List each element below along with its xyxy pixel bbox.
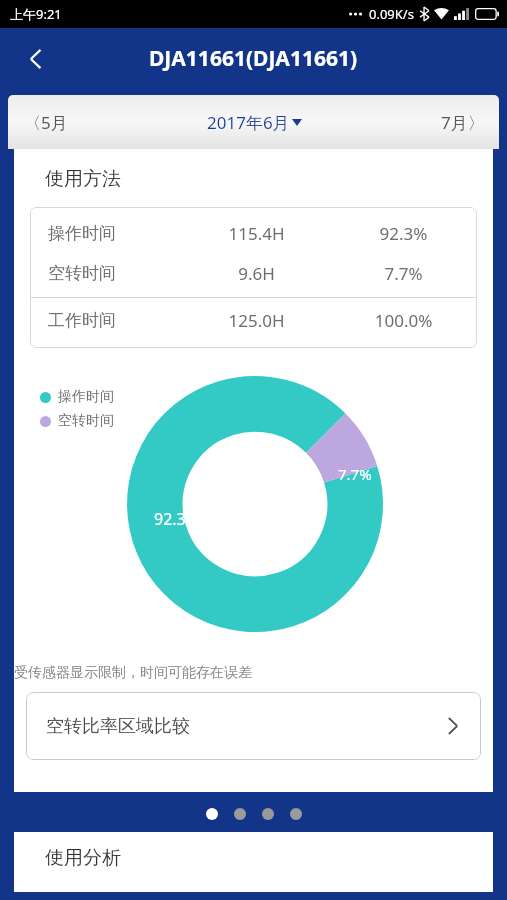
button[interactable]: 空转比率区域比较: [26, 692, 481, 760]
staticText: 7.7%: [330, 262, 477, 285]
button[interactable]: 7月〉: [355, 95, 499, 149]
button[interactable]: Back: [14, 37, 58, 81]
staticText: 使用方法: [45, 167, 121, 191]
staticText: 9.6H: [183, 262, 330, 285]
staticText: 受传感器显示限制，时间可能存在误差: [14, 664, 469, 682]
staticText: DJA11661(DJA11661): [149, 44, 358, 73]
staticText: 〈5月: [24, 111, 68, 134]
button[interactable]: 〈5月: [8, 95, 153, 149]
staticText: 操作时间: [48, 223, 183, 244]
staticText: 92.3%: [154, 508, 200, 530]
staticText: 100.0%: [330, 309, 477, 332]
staticText: 空转时间: [58, 412, 114, 430]
staticText: 7月〉: [441, 111, 485, 134]
button[interactable]: 2017年6月: [153, 95, 355, 149]
staticText: 上午9:21: [10, 5, 62, 23]
staticText: 7.7%: [338, 464, 372, 484]
staticText: 125.0H: [183, 309, 330, 332]
staticText: 0.09K/s: [369, 5, 414, 23]
staticText: 空转时间: [48, 263, 183, 284]
staticText: 115.4H: [183, 222, 330, 245]
staticText: 2017年6月: [207, 111, 290, 134]
staticText: 92.3%: [330, 222, 477, 245]
staticText: 操作时间: [58, 388, 114, 406]
staticText: 空转比率区域比较: [46, 715, 447, 738]
staticText: 使用分析: [45, 846, 121, 870]
staticText: 工作时间: [48, 310, 183, 331]
